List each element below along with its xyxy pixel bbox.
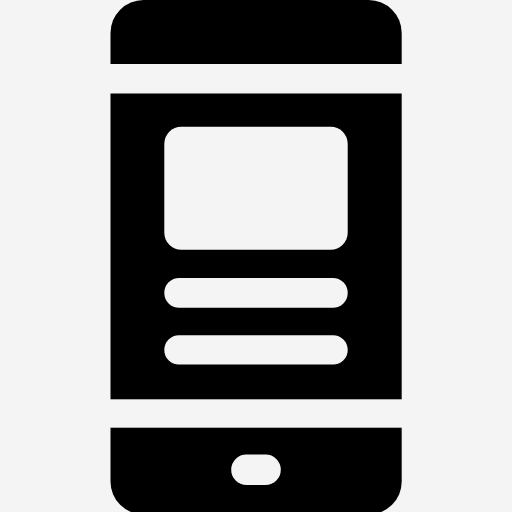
button[interactable]: Featured card [164,127,347,250]
button[interactable]: Home [231,455,281,486]
button[interactable]: List item 1 [164,278,347,308]
button[interactable]: List item 2 [164,335,347,364]
